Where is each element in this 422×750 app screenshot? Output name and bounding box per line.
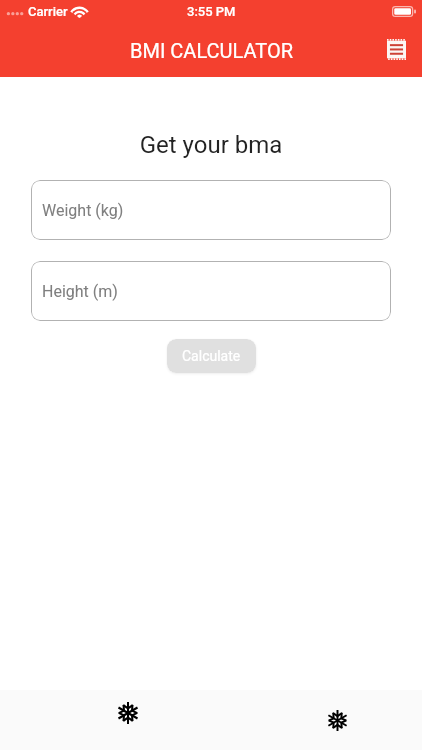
staticText: Get your bma — [0, 131, 422, 159]
staticText: Height (m) — [42, 282, 118, 301]
button[interactable]: Menu — [381, 34, 411, 64]
staticText: Weight (kg) — [42, 201, 124, 220]
button[interactable]: Home — [0, 690, 211, 750]
staticText: BMI CALCULATOR — [130, 39, 293, 62]
staticText: Carrier — [28, 4, 68, 19]
staticText: Calculate — [182, 348, 241, 364]
button[interactable]: Weight (kg) — [31, 180, 391, 240]
button[interactable]: Height (m) — [31, 261, 391, 321]
staticText: 3:55 PM — [187, 4, 236, 19]
button[interactable]: Calculate — [167, 339, 256, 373]
button[interactable]: History — [211, 690, 422, 750]
